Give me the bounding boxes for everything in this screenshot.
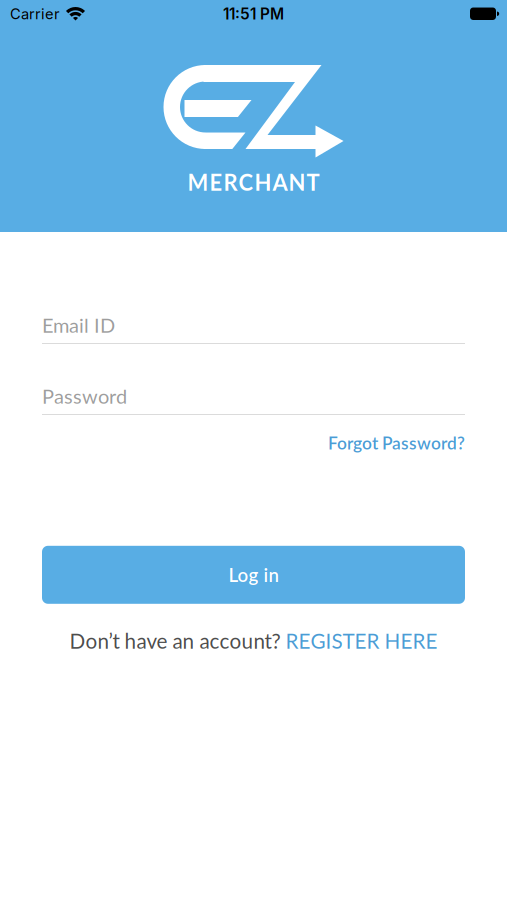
staticText: M E R C H A N T: [187, 169, 319, 195]
staticText: Email ID: [42, 313, 115, 337]
button[interactable]: Password: [42, 384, 465, 415]
button[interactable]: Log in: [42, 546, 465, 604]
staticText: Log in: [228, 564, 278, 586]
staticText: 11:51 PM: [223, 5, 284, 23]
staticText: Don’t have an account?: [69, 628, 280, 653]
button[interactable]: REGISTER HERE: [285, 628, 437, 653]
staticText: Forgot Password?: [328, 432, 465, 453]
button[interactable]: Email ID: [42, 313, 465, 344]
staticText: REGISTER HERE: [285, 628, 437, 653]
staticText: Password: [42, 384, 127, 408]
button[interactable]: Forgot Password?: [328, 432, 465, 453]
staticText: Carrier: [10, 5, 60, 23]
